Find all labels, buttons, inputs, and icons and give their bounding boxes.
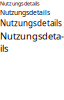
staticText: Nutzungsdetails	[0, 0, 40, 7]
staticText: Nutzungsdetails	[0, 18, 62, 28]
staticText: Nutzungsdetails	[0, 8, 50, 17]
staticText: Nutzungsdetails	[0, 30, 64, 54]
